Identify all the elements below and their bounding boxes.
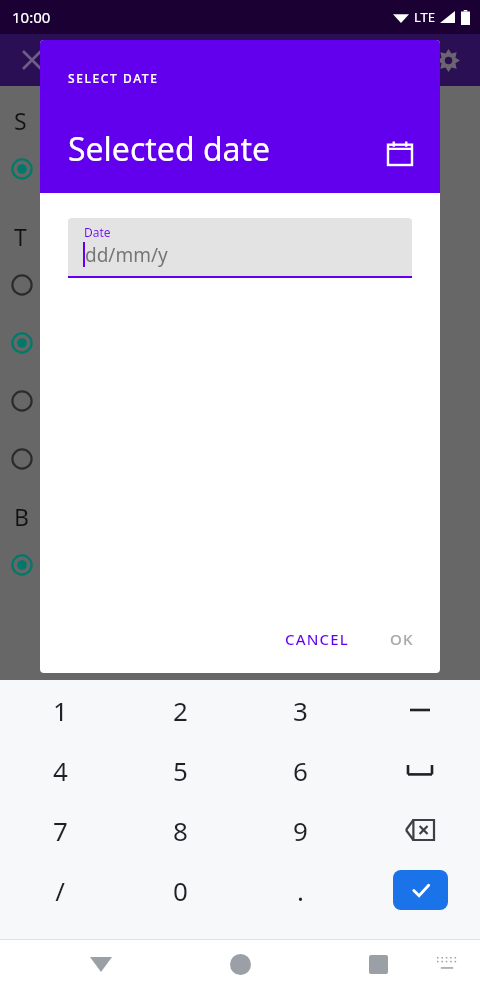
staticText: /: [55, 873, 65, 908]
button[interactable]: /: [0, 860, 120, 920]
staticText: 0: [173, 873, 188, 908]
button[interactable]: 6: [240, 740, 360, 800]
staticText: T: [14, 221, 27, 252]
button[interactable]: 0: [120, 860, 240, 920]
staticText: 7: [53, 813, 68, 848]
button[interactable]: Recent apps: [355, 941, 401, 987]
button[interactable]: 2: [120, 680, 240, 740]
staticText: 4: [53, 753, 68, 788]
button[interactable]: Backspace: [360, 800, 480, 860]
button[interactable]: Date: [68, 218, 412, 276]
button[interactable]: Change keyboard: [427, 944, 467, 984]
button[interactable]: [0, 372, 480, 430]
button[interactable]: 3: [240, 680, 360, 740]
staticText: LTE: [414, 8, 436, 26]
button[interactable]: [0, 314, 480, 372]
staticText: .: [297, 873, 304, 908]
button[interactable]: Space: [360, 740, 480, 800]
button[interactable]: Switch to calendar input: [378, 131, 422, 175]
staticText: 6: [293, 753, 308, 788]
staticText: 3: [293, 693, 308, 728]
button[interactable]: Enter: [360, 860, 480, 920]
button[interactable]: Back: [78, 941, 124, 987]
staticText: 5: [173, 753, 188, 788]
button[interactable]: 4: [0, 740, 120, 800]
button[interactable]: Dash: [360, 680, 480, 740]
button[interactable]: Close: [12, 40, 52, 80]
button[interactable]: 7: [0, 800, 120, 860]
button[interactable]: [0, 536, 480, 594]
staticText: 1: [53, 693, 68, 728]
button[interactable]: CANCEL: [271, 619, 364, 659]
button[interactable]: 8: [120, 800, 240, 860]
staticText: OK: [390, 629, 414, 649]
button[interactable]: Home: [217, 941, 263, 987]
staticText: SELECT DATE: [68, 70, 159, 86]
staticText: dd/mm/y: [85, 242, 168, 268]
staticText: Date: [84, 224, 111, 240]
staticText: 9: [293, 813, 308, 848]
button[interactable]: 9: [240, 800, 360, 860]
button[interactable]: [0, 430, 480, 488]
staticText: Selected date: [68, 127, 271, 171]
button[interactable]: Settings: [428, 40, 468, 80]
button[interactable]: 5: [120, 740, 240, 800]
button[interactable]: OK: [374, 619, 430, 659]
staticText: 8: [173, 813, 188, 848]
staticText: 2: [173, 693, 188, 728]
button[interactable]: .: [240, 860, 360, 920]
staticText: S: [14, 105, 27, 136]
button[interactable]: [0, 256, 480, 314]
staticText: CANCEL: [285, 629, 350, 649]
button[interactable]: 1: [0, 680, 120, 740]
button[interactable]: [0, 140, 480, 198]
staticText: B: [14, 501, 29, 532]
staticText: 10:00: [12, 7, 51, 27]
